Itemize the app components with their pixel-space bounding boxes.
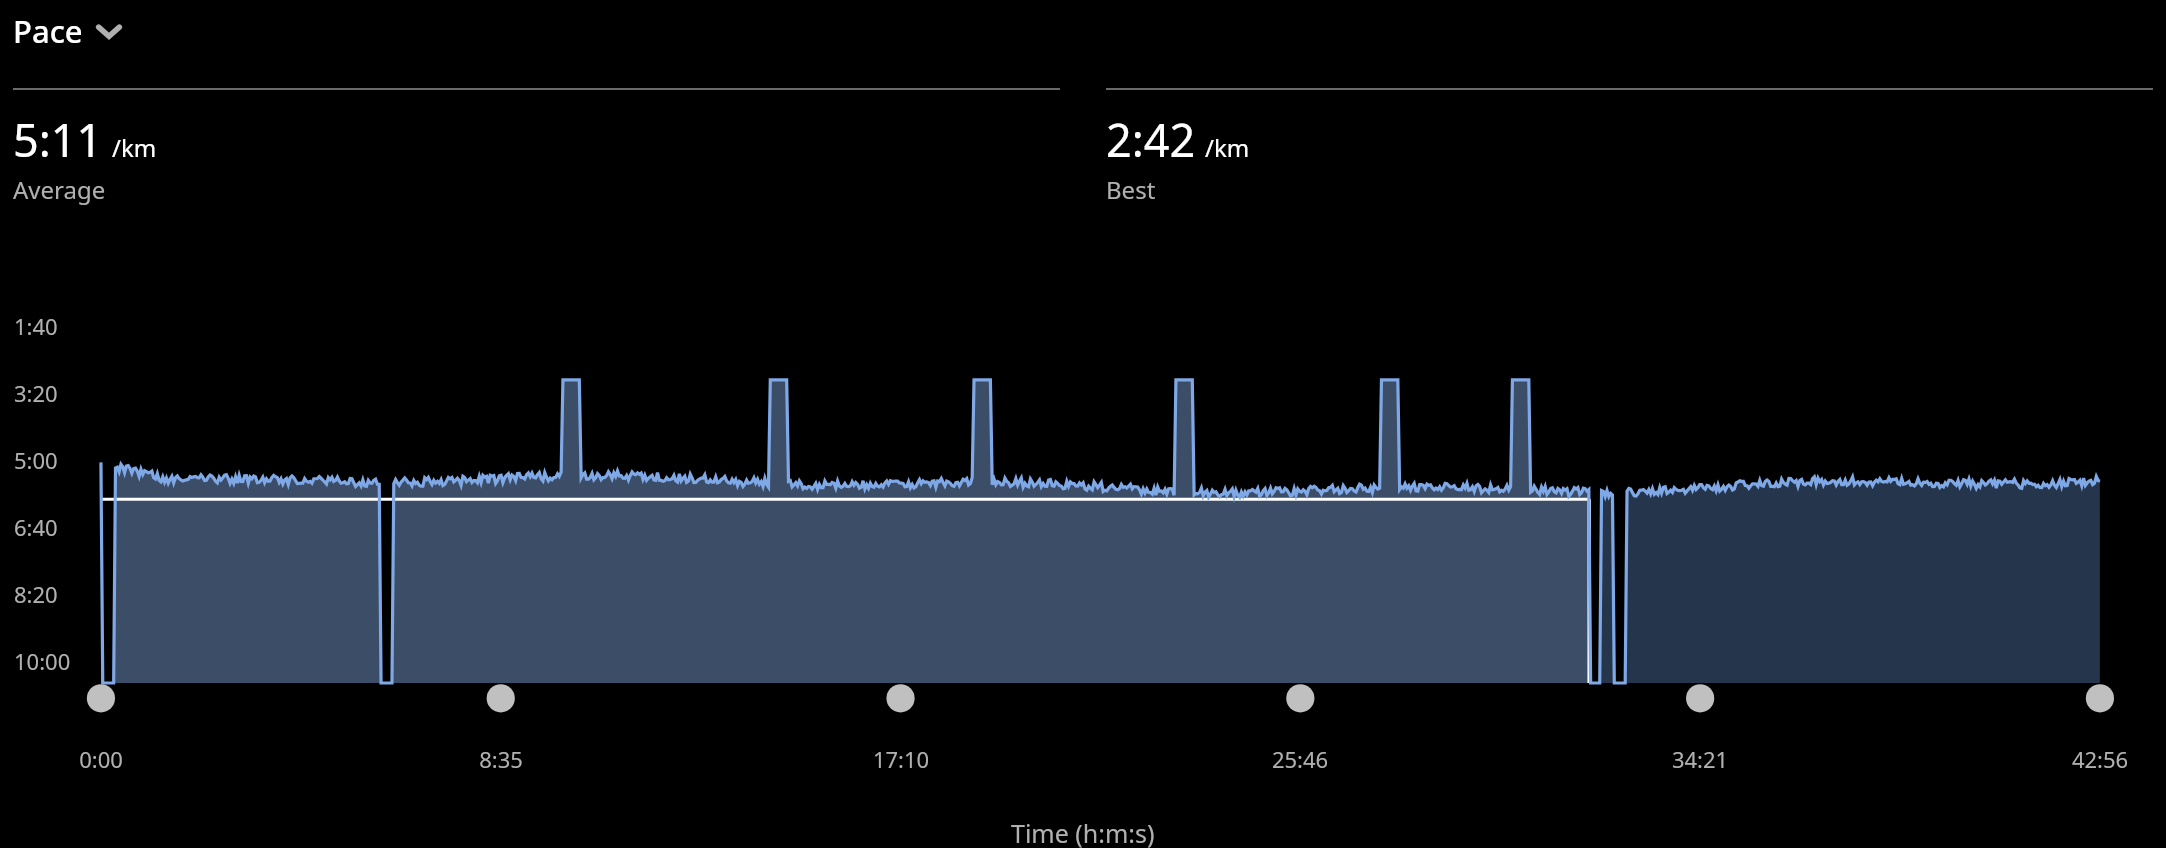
button[interactable]: Pace bbox=[13, 4, 133, 58]
button[interactable]: 5:11 bbox=[13, 88, 1060, 206]
staticText: 17:10 bbox=[821, 744, 981, 774]
staticText: 25:46 bbox=[1220, 744, 1380, 774]
other: Change metric bbox=[95, 17, 123, 45]
staticText: Pace bbox=[13, 10, 83, 52]
staticText: 2:42 bbox=[1106, 109, 1196, 170]
staticText: 8:35 bbox=[421, 744, 581, 774]
staticText: 6:40 bbox=[14, 512, 58, 542]
staticText: 8:20 bbox=[14, 579, 58, 609]
button[interactable]: 2:42 bbox=[1106, 88, 2153, 206]
staticText: /km bbox=[1205, 131, 1250, 164]
staticText: 1:40 bbox=[14, 311, 58, 341]
staticText: 5:00 bbox=[14, 445, 58, 475]
staticText: 5:11 bbox=[13, 109, 103, 170]
staticText: Average bbox=[13, 173, 106, 206]
staticText: Best bbox=[1106, 173, 1156, 206]
staticText: 10:00 bbox=[14, 646, 71, 676]
staticText: 3:20 bbox=[14, 378, 58, 408]
staticText: 42:56 bbox=[2020, 744, 2166, 774]
staticText: 0:00 bbox=[21, 744, 181, 774]
staticText: 34:21 bbox=[1620, 744, 1780, 774]
staticText: /km bbox=[112, 131, 157, 164]
other: Pace over time chart bbox=[0, 248, 2166, 848]
staticText: Time (h:m:s) bbox=[1011, 816, 1155, 848]
